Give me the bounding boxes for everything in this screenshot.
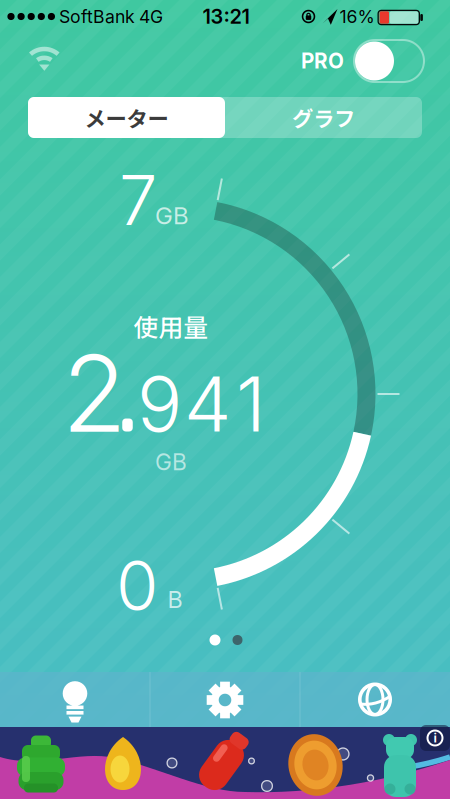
staticText: GB bbox=[155, 201, 189, 230]
staticText: 7 bbox=[119, 158, 157, 242]
staticText: i bbox=[433, 730, 436, 746]
staticText: メーター bbox=[84, 102, 168, 133]
button[interactable]: メーター bbox=[28, 97, 225, 138]
button[interactable]: Settings bbox=[150, 672, 300, 727]
staticText: GB bbox=[155, 448, 187, 476]
button[interactable]: グラフ bbox=[225, 97, 422, 138]
button[interactable]: Tips bbox=[0, 672, 150, 727]
button[interactable]: Advertisement bbox=[0, 727, 450, 799]
staticText: 4 bbox=[184, 358, 231, 449]
staticText: 1 bbox=[236, 358, 266, 449]
staticText: SoftBank bbox=[59, 6, 135, 27]
staticText: グラフ bbox=[292, 102, 355, 133]
button[interactable]: Ad information bbox=[420, 725, 450, 751]
staticText: 9 bbox=[137, 358, 182, 449]
button[interactable]: PRO bbox=[353, 39, 425, 83]
button[interactable]: Wi-Fi bbox=[12, 34, 76, 90]
staticText: 13:21 bbox=[202, 4, 249, 29]
staticText: 使用量 bbox=[133, 308, 208, 344]
staticText: B bbox=[167, 585, 182, 614]
staticText: 0 bbox=[116, 544, 158, 627]
staticText: 2 bbox=[62, 330, 127, 457]
button[interactable]: Web bbox=[300, 672, 450, 727]
staticText: 4G bbox=[139, 6, 163, 27]
staticText: 16% bbox=[339, 6, 374, 27]
staticText: PRO bbox=[301, 48, 344, 73]
